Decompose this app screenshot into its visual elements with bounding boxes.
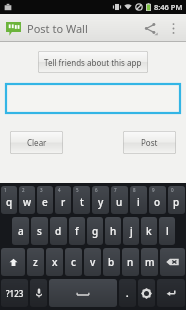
staticText: p — [173, 195, 180, 209]
button[interactable]: n — [122, 248, 139, 276]
button[interactable]: f — [69, 217, 85, 245]
staticText: ?123 — [6, 288, 24, 299]
button[interactable]: Share — [138, 14, 162, 42]
staticText: m — [145, 255, 155, 269]
staticText: b — [108, 255, 115, 269]
staticText: Post to Wall — [27, 21, 88, 36]
staticText: u — [116, 195, 123, 209]
button[interactable]: 4 — [55, 186, 71, 214]
button[interactable]: d — [50, 217, 67, 245]
other: Settings — [138, 279, 155, 307]
button[interactable]: z — [27, 248, 44, 276]
staticText: t — [80, 195, 84, 209]
button[interactable]: Tell friends about this app — [38, 51, 148, 73]
staticText: x — [52, 255, 58, 269]
other: Space — [49, 279, 117, 307]
button[interactable]: l — [159, 217, 175, 245]
button[interactable]: Post — [123, 131, 176, 154]
staticText: 0 — [171, 187, 174, 193]
other: Enter — [157, 279, 185, 307]
button[interactable]: c — [65, 248, 82, 276]
button[interactable]: h — [105, 217, 121, 245]
staticText: 7 — [114, 187, 117, 193]
staticText: r — [61, 195, 66, 209]
staticText: Clear — [27, 137, 47, 148]
staticText: y — [98, 195, 104, 209]
button[interactable]: 9 — [149, 186, 166, 214]
staticText: a — [18, 224, 24, 238]
staticText: h — [110, 224, 117, 238]
staticText: i — [137, 195, 140, 209]
staticText: 8:46 PM — [154, 2, 183, 12]
other: Voice input — [30, 279, 47, 307]
staticText: 9 — [152, 187, 155, 193]
staticText: g — [92, 224, 99, 238]
staticText: 1 — [4, 187, 7, 193]
staticText: c — [71, 255, 76, 269]
staticText: 4 — [58, 187, 61, 193]
button[interactable]: Space — [49, 279, 117, 307]
staticText: 5 — [76, 187, 79, 193]
staticText: z — [33, 255, 38, 269]
staticText: k — [146, 224, 152, 238]
staticText: 3 — [40, 187, 43, 193]
button[interactable]: m — [141, 248, 158, 276]
staticText: j — [130, 224, 133, 238]
staticText: 8 — [133, 187, 136, 193]
button[interactable]: Enter — [157, 279, 185, 307]
button[interactable]: a — [12, 217, 29, 245]
button[interactable]: k — [141, 217, 157, 245]
button[interactable]: . — [119, 279, 136, 307]
staticText: s — [37, 224, 42, 238]
button[interactable]: 3 — [37, 186, 53, 214]
staticText: 6 — [95, 187, 98, 193]
button[interactable] — [6, 84, 180, 113]
staticText: d — [55, 224, 62, 238]
staticText: w — [23, 195, 32, 209]
staticText: . — [126, 287, 129, 299]
button[interactable]: v — [84, 248, 101, 276]
button[interactable]: 5 — [73, 186, 90, 214]
staticText: n — [127, 255, 134, 269]
button[interactable]: 1 — [1, 186, 17, 214]
staticText: Post — [141, 137, 158, 148]
staticText: l — [166, 224, 169, 238]
button[interactable]: Clear — [10, 131, 63, 154]
staticText: Tell friends about this app — [44, 57, 142, 68]
button[interactable]: 6 — [92, 186, 109, 214]
button[interactable]: 8 — [130, 186, 147, 214]
button[interactable]: x — [46, 248, 63, 276]
staticText: v — [90, 255, 96, 269]
button[interactable]: More options — [164, 14, 182, 42]
staticText: f — [75, 224, 79, 238]
button[interactable]: 2 — [19, 186, 35, 214]
staticText: q — [6, 195, 13, 209]
button[interactable]: Backspace — [160, 248, 185, 276]
staticText: o — [154, 195, 161, 209]
staticText: e — [42, 195, 48, 209]
button[interactable]: 0 — [168, 186, 185, 214]
button[interactable]: j — [123, 217, 139, 245]
button[interactable]: ?123 — [1, 279, 28, 307]
button[interactable]: g — [87, 217, 103, 245]
button[interactable]: Shift — [1, 248, 25, 276]
button[interactable]: b — [103, 248, 120, 276]
button[interactable]: Settings — [138, 279, 155, 307]
button[interactable]: Voice input — [30, 279, 47, 307]
staticText: 2 — [22, 187, 25, 193]
button[interactable]: s — [31, 217, 48, 245]
button[interactable]: 7 — [111, 186, 128, 214]
